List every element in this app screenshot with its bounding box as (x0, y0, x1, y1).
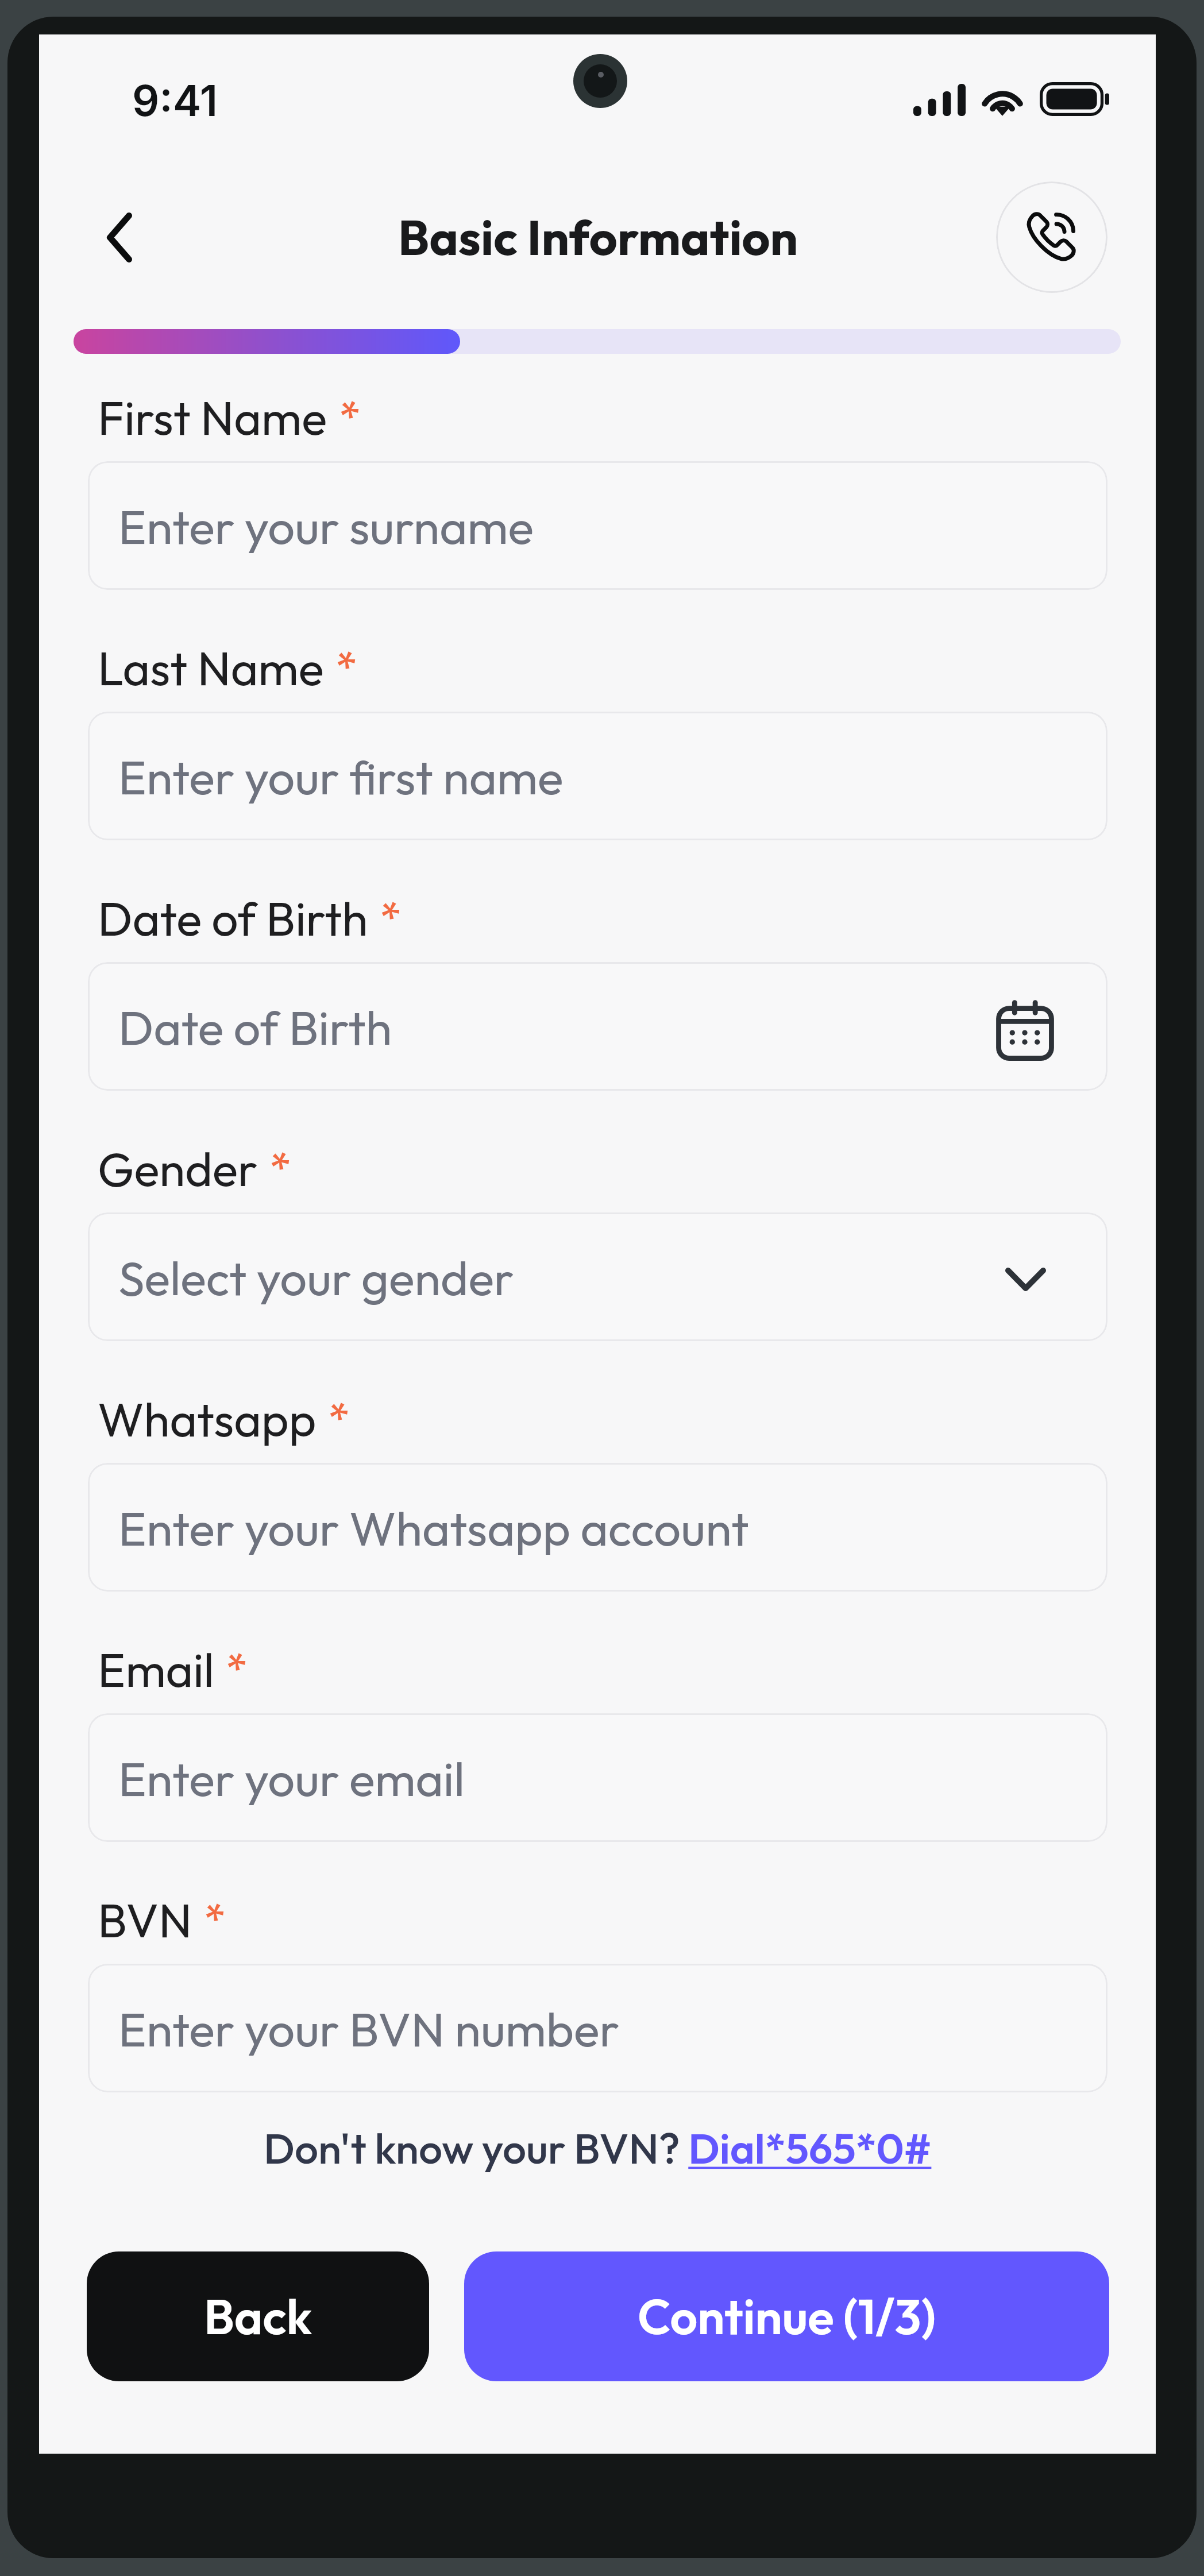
staticText: * (328, 1391, 350, 1447)
staticText: Select your gender (118, 1248, 514, 1308)
staticText: * (226, 1641, 248, 1697)
staticText: Date of Birth (98, 889, 368, 948)
button[interactable]: Back (87, 2251, 429, 2381)
staticText: Enter your email (118, 1748, 465, 1809)
staticText: * (380, 890, 402, 946)
button[interactable]: Date of Birth (88, 962, 1107, 1091)
staticText: Enter your BVN number (118, 1999, 620, 2059)
staticText: First Name (98, 388, 327, 447)
button[interactable]: Call support (996, 181, 1107, 293)
staticText: * (204, 1891, 226, 1948)
staticText: Enter your first name (118, 747, 564, 807)
staticText: Basic Information (398, 206, 798, 268)
button[interactable]: Back (78, 196, 161, 279)
button[interactable]: Enter your surname (88, 461, 1107, 590)
staticText: Date of Birth (118, 997, 392, 1057)
staticText: * (335, 639, 358, 696)
button[interactable]: Enter your first name (88, 712, 1107, 840)
button[interactable]: Select your gender (88, 1212, 1107, 1341)
button[interactable]: Enter your email (88, 1713, 1107, 1842)
button[interactable]: Continue (1/3) (464, 2251, 1109, 2381)
button[interactable]: Don't know your BVN? Dial*565*0# (264, 2122, 932, 2175)
staticText: Gender (98, 1139, 258, 1198)
staticText: 9:41 (132, 75, 218, 126)
staticText: Enter your surname (118, 496, 534, 557)
staticText: Back (204, 2286, 312, 2347)
staticText: Continue (1/3) (638, 2286, 936, 2347)
button[interactable]: Enter your Whatsapp account (88, 1463, 1107, 1592)
staticText: * (269, 1140, 292, 1196)
staticText: Last Name (98, 638, 324, 697)
staticText: Whatsapp (98, 1389, 317, 1449)
button[interactable]: Enter your BVN number (88, 1964, 1107, 2092)
staticText: Enter your Whatsapp account (118, 1498, 749, 1558)
staticText: Email (98, 1640, 214, 1699)
staticText: Don't know your BVN? Dial*565*0# (264, 2122, 932, 2175)
staticText: * (339, 389, 361, 445)
staticText: BVN (98, 1890, 192, 1949)
